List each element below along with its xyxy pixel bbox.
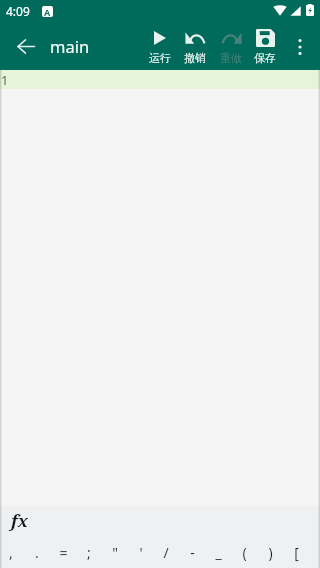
button[interactable]: / bbox=[153, 540, 179, 568]
staticText: 保存 bbox=[254, 51, 276, 65]
button[interactable]: 撤销 bbox=[177, 24, 213, 70]
staticText: fx bbox=[11, 509, 29, 532]
staticText: = bbox=[59, 543, 68, 562]
button[interactable]: 运行 bbox=[142, 24, 178, 70]
staticText: . bbox=[35, 543, 39, 562]
button[interactable]: " bbox=[102, 540, 128, 568]
button[interactable]: - bbox=[179, 540, 205, 568]
staticText: 重做 bbox=[220, 51, 242, 65]
button[interactable]: ' bbox=[128, 540, 154, 568]
staticText: 撤销 bbox=[184, 51, 206, 65]
staticText: 运行 bbox=[149, 51, 171, 65]
staticText: ' bbox=[139, 543, 143, 562]
staticText: ; bbox=[87, 543, 91, 562]
button[interactable]: 重做 bbox=[213, 24, 249, 70]
staticText: - bbox=[190, 543, 195, 562]
staticText: ( bbox=[242, 543, 247, 562]
button[interactable]: _ bbox=[205, 540, 231, 568]
button[interactable]: = bbox=[50, 540, 76, 568]
staticText: [ bbox=[294, 543, 299, 562]
staticText: " bbox=[112, 543, 118, 562]
button[interactable]: [ bbox=[283, 540, 309, 568]
staticText: A bbox=[44, 6, 51, 17]
button[interactable]: ) bbox=[257, 540, 283, 568]
button[interactable]: Back bbox=[9, 30, 42, 63]
button[interactable]: ; bbox=[76, 540, 102, 568]
staticText: 1 bbox=[1, 71, 9, 89]
staticText: ) bbox=[268, 543, 273, 562]
button[interactable]: , bbox=[0, 540, 24, 568]
staticText: _ bbox=[215, 543, 222, 562]
button[interactable]: . bbox=[24, 540, 50, 568]
button[interactable]: More options bbox=[285, 24, 315, 70]
staticText: main bbox=[50, 35, 90, 57]
staticText: 4:09 bbox=[6, 3, 30, 19]
staticText: / bbox=[163, 543, 169, 562]
button[interactable]: 保存 bbox=[247, 24, 283, 70]
staticText: , bbox=[9, 543, 13, 562]
button[interactable]: ( bbox=[231, 540, 257, 568]
